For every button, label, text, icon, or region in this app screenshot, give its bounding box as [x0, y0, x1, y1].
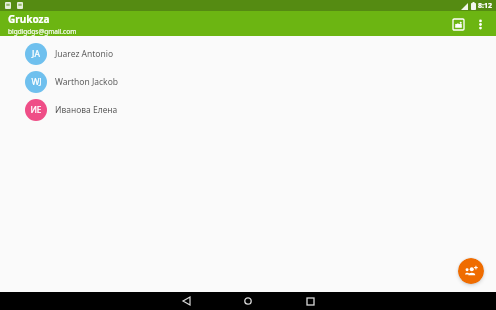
button[interactable]: More options [470, 14, 490, 34]
button[interactable]: Recent apps [279, 292, 341, 310]
staticText: ИЕ [30, 104, 42, 116]
button[interactable]: JA [0, 40, 496, 68]
button[interactable]: Back [155, 292, 217, 310]
staticText: WJ [31, 76, 42, 88]
staticText: Иванова Елена [55, 104, 118, 116]
staticText: Warthon Jackob [55, 76, 119, 88]
button[interactable]: Add contact [458, 258, 484, 284]
staticText: JA [32, 48, 40, 60]
button[interactable]: WJ [0, 68, 496, 96]
button[interactable]: Photos [448, 14, 468, 34]
staticText: 8:12 [478, 1, 492, 11]
button[interactable]: ИЕ [0, 96, 496, 124]
staticText: bigdigdgs@gmail.com [8, 27, 77, 36]
button[interactable]: Home [217, 292, 279, 310]
staticText: Grukoza [8, 12, 50, 26]
staticText: Juarez Antonio [55, 48, 114, 60]
